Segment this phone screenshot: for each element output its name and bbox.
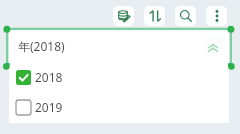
button[interactable]: Edit data source <box>113 6 134 26</box>
button[interactable]: Collapse <box>203 36 223 56</box>
staticText: 2018 <box>35 69 63 85</box>
button[interactable]: Search <box>175 6 196 26</box>
button[interactable]: Sort <box>144 6 165 26</box>
staticText: 2019 <box>35 99 63 115</box>
button[interactable]: 2019 <box>16 99 63 115</box>
button[interactable]: 2018 <box>16 69 63 85</box>
staticText: 年(2018) <box>18 38 65 54</box>
button[interactable]: More options <box>206 6 227 26</box>
